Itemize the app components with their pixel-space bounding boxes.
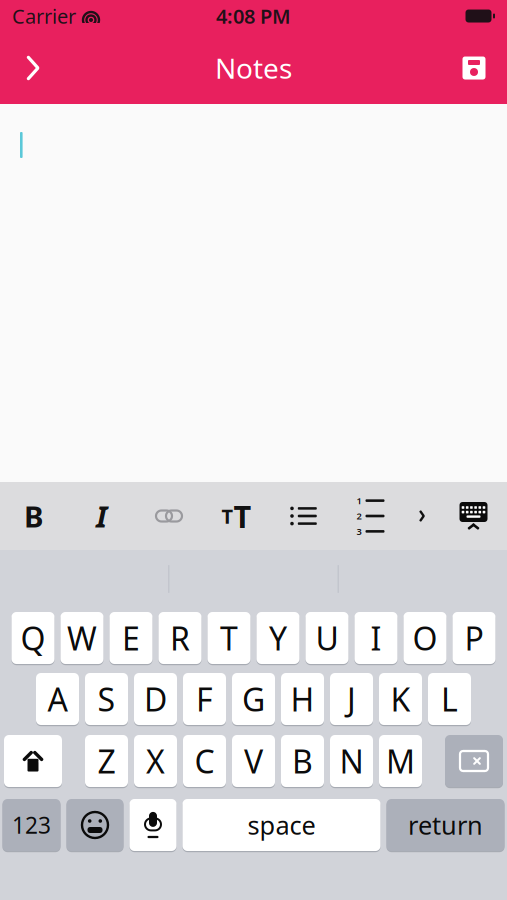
staticText: 3: [356, 525, 361, 538]
staticText: 2: [356, 510, 361, 522]
button[interactable]: Insert link: [135, 482, 203, 550]
button[interactable]: W: [60, 611, 103, 665]
staticText: P: [464, 617, 483, 659]
staticText: I: [96, 496, 107, 535]
staticText: 1: [356, 494, 361, 507]
button[interactable]: H: [281, 672, 324, 726]
button[interactable]: E: [109, 611, 152, 665]
button[interactable]: Italic: [68, 482, 135, 550]
button[interactable]: Emoji: [66, 798, 123, 852]
button[interactable]: Text size: [203, 482, 270, 550]
staticText: Notes: [215, 49, 292, 87]
staticText: J: [347, 678, 356, 720]
button[interactable]: R: [158, 611, 201, 665]
staticText: R: [170, 617, 190, 659]
button[interactable]: Numbered list: [337, 482, 404, 550]
staticText: C: [194, 740, 214, 782]
button[interactable]: Shift: [4, 734, 62, 788]
button[interactable]: P: [452, 611, 495, 665]
staticText: U: [315, 617, 338, 659]
staticText: B: [292, 740, 313, 782]
button[interactable]: S: [85, 672, 128, 726]
button[interactable]: Q: [11, 611, 54, 665]
staticText: W: [67, 617, 97, 659]
button[interactable]: V: [232, 734, 275, 788]
button[interactable]: Save: [447, 44, 501, 92]
staticText: L: [441, 678, 458, 720]
button[interactable]: N: [330, 734, 373, 788]
staticText: space: [247, 808, 315, 842]
staticText: A: [47, 678, 67, 720]
staticText: X: [146, 740, 165, 782]
button[interactable]: K: [379, 672, 422, 726]
button[interactable]: O: [403, 611, 446, 665]
staticText: I: [370, 617, 381, 659]
button[interactable]: T: [207, 611, 250, 665]
staticText: 123: [12, 810, 51, 840]
staticText: T: [221, 503, 233, 529]
staticText: S: [97, 678, 115, 720]
staticText: Carrier: [12, 3, 76, 29]
staticText: T: [233, 496, 251, 536]
button[interactable]: Hide keyboard: [440, 482, 507, 550]
button[interactable]: I: [354, 611, 397, 665]
button[interactable]: Back: [6, 44, 60, 92]
button[interactable]: space: [182, 798, 380, 852]
button[interactable]: G: [232, 672, 275, 726]
button[interactable]: Bold: [0, 482, 68, 550]
staticText: V: [244, 740, 263, 782]
staticText: T: [220, 617, 238, 659]
button[interactable]: Delete: [445, 734, 503, 788]
button[interactable]: Y: [256, 611, 299, 665]
button[interactable]: M: [379, 734, 422, 788]
button[interactable]: F: [183, 672, 226, 726]
button[interactable]: A: [36, 672, 79, 726]
staticText: G: [242, 678, 265, 720]
staticText: O: [412, 617, 437, 659]
button[interactable]: Numbers: [2, 798, 60, 852]
staticText: B: [24, 496, 44, 535]
button[interactable]: X: [134, 734, 177, 788]
button[interactable]: return: [386, 798, 504, 852]
button[interactable]: L: [428, 672, 471, 726]
button[interactable]: More: [404, 482, 440, 550]
staticText: return: [408, 808, 483, 842]
button[interactable]: Z: [85, 734, 128, 788]
staticText: E: [122, 617, 140, 659]
button[interactable]: U: [305, 611, 348, 665]
staticText: M: [386, 740, 415, 782]
staticText: H: [290, 678, 314, 720]
staticText: D: [144, 678, 167, 720]
staticText: 4:08 PM: [216, 3, 291, 29]
staticText: N: [339, 740, 363, 782]
staticText: Y: [269, 617, 287, 659]
button[interactable]: D: [134, 672, 177, 726]
button[interactable]: C: [183, 734, 226, 788]
staticText: Q: [20, 617, 45, 659]
button[interactable]: B: [281, 734, 324, 788]
button[interactable]: J: [330, 672, 373, 726]
button[interactable]: Dictation: [129, 798, 176, 852]
staticText: K: [390, 678, 410, 720]
staticText: F: [196, 678, 213, 720]
staticText: Z: [97, 740, 115, 782]
button[interactable]: Bulleted list: [270, 482, 337, 550]
